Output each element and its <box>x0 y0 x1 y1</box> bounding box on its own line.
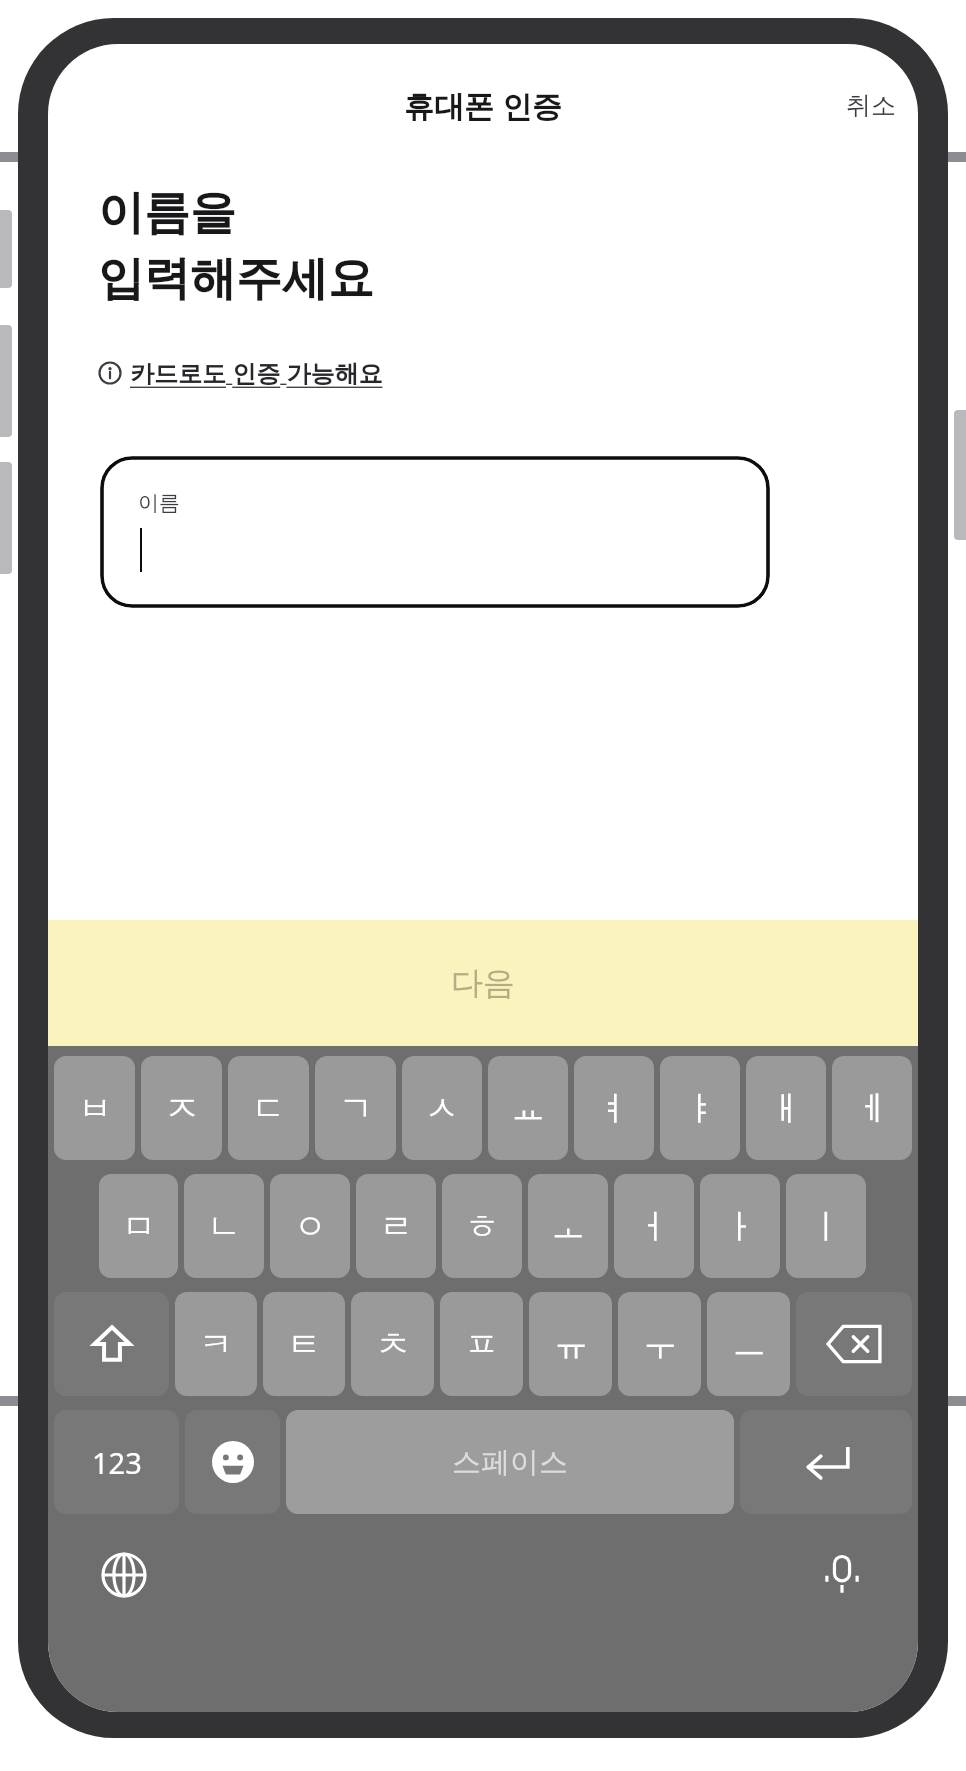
staticText: ㄷ <box>252 1087 286 1130</box>
staticText: ㅍ <box>465 1323 499 1366</box>
button[interactable]: ㄹ <box>356 1174 436 1278</box>
button[interactable]: Change language <box>96 1547 152 1603</box>
button[interactable]: ㅕ <box>574 1056 654 1160</box>
button[interactable]: ㅓ <box>614 1174 694 1278</box>
button[interactable]: ㅗ <box>528 1174 608 1278</box>
staticText: ㅜ <box>643 1323 677 1366</box>
button[interactable]: ㅠ <box>529 1292 612 1396</box>
staticText: ㅑ <box>683 1087 717 1130</box>
staticText: ㅕ <box>597 1087 631 1130</box>
button[interactable]: 다음 <box>48 920 918 1046</box>
staticText: ㅋ <box>199 1323 233 1366</box>
button[interactable]: ㅁ <box>99 1174 178 1278</box>
button[interactable]: 123 <box>54 1410 179 1514</box>
button[interactable]: ㅇ <box>270 1174 350 1278</box>
button[interactable]: ㅍ <box>440 1292 523 1396</box>
staticText: ㅠ <box>554 1323 588 1366</box>
button[interactable]: Voice input <box>814 1547 870 1603</box>
staticText: ㅛ <box>511 1087 545 1130</box>
staticText: 휴대폰 인증 <box>404 85 562 126</box>
button[interactable]: ㅂ <box>54 1056 135 1160</box>
staticText: ㅗ <box>551 1205 585 1248</box>
staticText: ㅏ <box>723 1205 757 1248</box>
button[interactable]: ㅡ <box>707 1292 790 1396</box>
staticText: ㅁ <box>122 1205 156 1248</box>
button[interactable]: ㅐ <box>746 1056 826 1160</box>
staticText: ㄴ <box>207 1205 241 1248</box>
button[interactable]: ㅅ <box>402 1056 482 1160</box>
button[interactable]: 카드로도 인증 가능해요 <box>94 350 387 395</box>
button[interactable]: ㄴ <box>184 1174 264 1278</box>
button[interactable]: Shift <box>54 1292 169 1396</box>
staticText: ㅌ <box>287 1323 321 1366</box>
staticText: ㅇ <box>293 1205 327 1248</box>
button[interactable]: Enter <box>740 1410 912 1514</box>
staticText: ㅊ <box>376 1323 410 1366</box>
button[interactable]: ㅈ <box>141 1056 222 1160</box>
button[interactable]: Backspace <box>796 1292 912 1396</box>
staticText: 입력해주세요 <box>98 250 374 308</box>
staticText: 카드로도 인증 가능해요 <box>130 356 383 389</box>
staticText: ㅔ <box>855 1087 889 1130</box>
staticText: ㄹ <box>379 1205 413 1248</box>
staticText: ㅎ <box>465 1205 499 1248</box>
button[interactable]: ㅏ <box>700 1174 780 1278</box>
button[interactable]: ㅌ <box>263 1292 345 1396</box>
staticText: ㅡ <box>732 1323 766 1366</box>
button[interactable]: 취소 <box>824 80 918 131</box>
staticText: 스페이스 <box>452 1444 568 1481</box>
staticText: 이름을 <box>98 184 236 242</box>
button[interactable]: ㅊ <box>351 1292 434 1396</box>
staticText: ㅓ <box>637 1205 671 1248</box>
button[interactable]: ㅋ <box>175 1292 257 1396</box>
staticText: ㅈ <box>165 1087 199 1130</box>
staticText: 이름 <box>138 490 180 516</box>
staticText: ㅣ <box>809 1205 843 1248</box>
button[interactable]: Emoji <box>185 1410 280 1514</box>
button[interactable]: ㅜ <box>618 1292 701 1396</box>
button[interactable]: 이름 <box>100 456 770 608</box>
staticText: ㄱ <box>339 1087 373 1130</box>
button[interactable]: ㅣ <box>786 1174 866 1278</box>
staticText: 123 <box>92 1443 142 1482</box>
button[interactable]: ㅎ <box>442 1174 522 1278</box>
button[interactable]: ㅛ <box>488 1056 568 1160</box>
button[interactable]: 스페이스 <box>286 1410 734 1514</box>
staticText: ㅂ <box>78 1087 112 1130</box>
button[interactable]: ㅔ <box>832 1056 912 1160</box>
staticText: 다음 <box>451 963 515 1003</box>
button[interactable]: ㄷ <box>228 1056 309 1160</box>
staticText: ㅐ <box>769 1087 803 1130</box>
button[interactable]: ㄱ <box>315 1056 396 1160</box>
button[interactable]: ㅑ <box>660 1056 740 1160</box>
staticText: 취소 <box>846 90 896 121</box>
staticText: ㅅ <box>425 1087 459 1130</box>
